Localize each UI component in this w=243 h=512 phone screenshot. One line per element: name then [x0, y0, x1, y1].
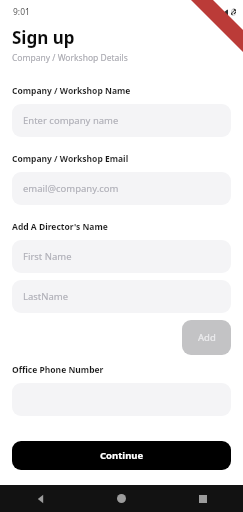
staticText: First Name [23, 250, 72, 263]
staticText: Enter company name [23, 114, 119, 127]
staticText: Office Phone Number [12, 364, 104, 376]
staticText: Company / Workshop Details [12, 52, 128, 64]
staticText: 9:01 [13, 6, 30, 18]
staticText: LastName [23, 290, 69, 303]
staticText: Company / Workshop Email [12, 153, 129, 165]
staticText: email@company.com [23, 182, 119, 195]
staticText: Add A Director's Name [12, 221, 108, 233]
staticText: Company / Workshop Name [12, 85, 131, 97]
button[interactable]: Continue [12, 441, 231, 470]
staticText: Continue [100, 449, 144, 462]
button[interactable]: Home [81, 485, 162, 512]
button[interactable]: Back [0, 485, 81, 512]
button[interactable]: LastName [12, 280, 231, 313]
staticText: Add [198, 331, 216, 344]
button[interactable]: email@company.com [12, 172, 231, 205]
button[interactable]: Recents [162, 485, 243, 512]
button[interactable]: Enter company name [12, 104, 231, 137]
button[interactable]: Add [182, 320, 231, 355]
staticText: Sign up [12, 26, 75, 49]
button[interactable]: First Name [12, 240, 231, 273]
staticText: DEBUG [223, 1, 242, 20]
